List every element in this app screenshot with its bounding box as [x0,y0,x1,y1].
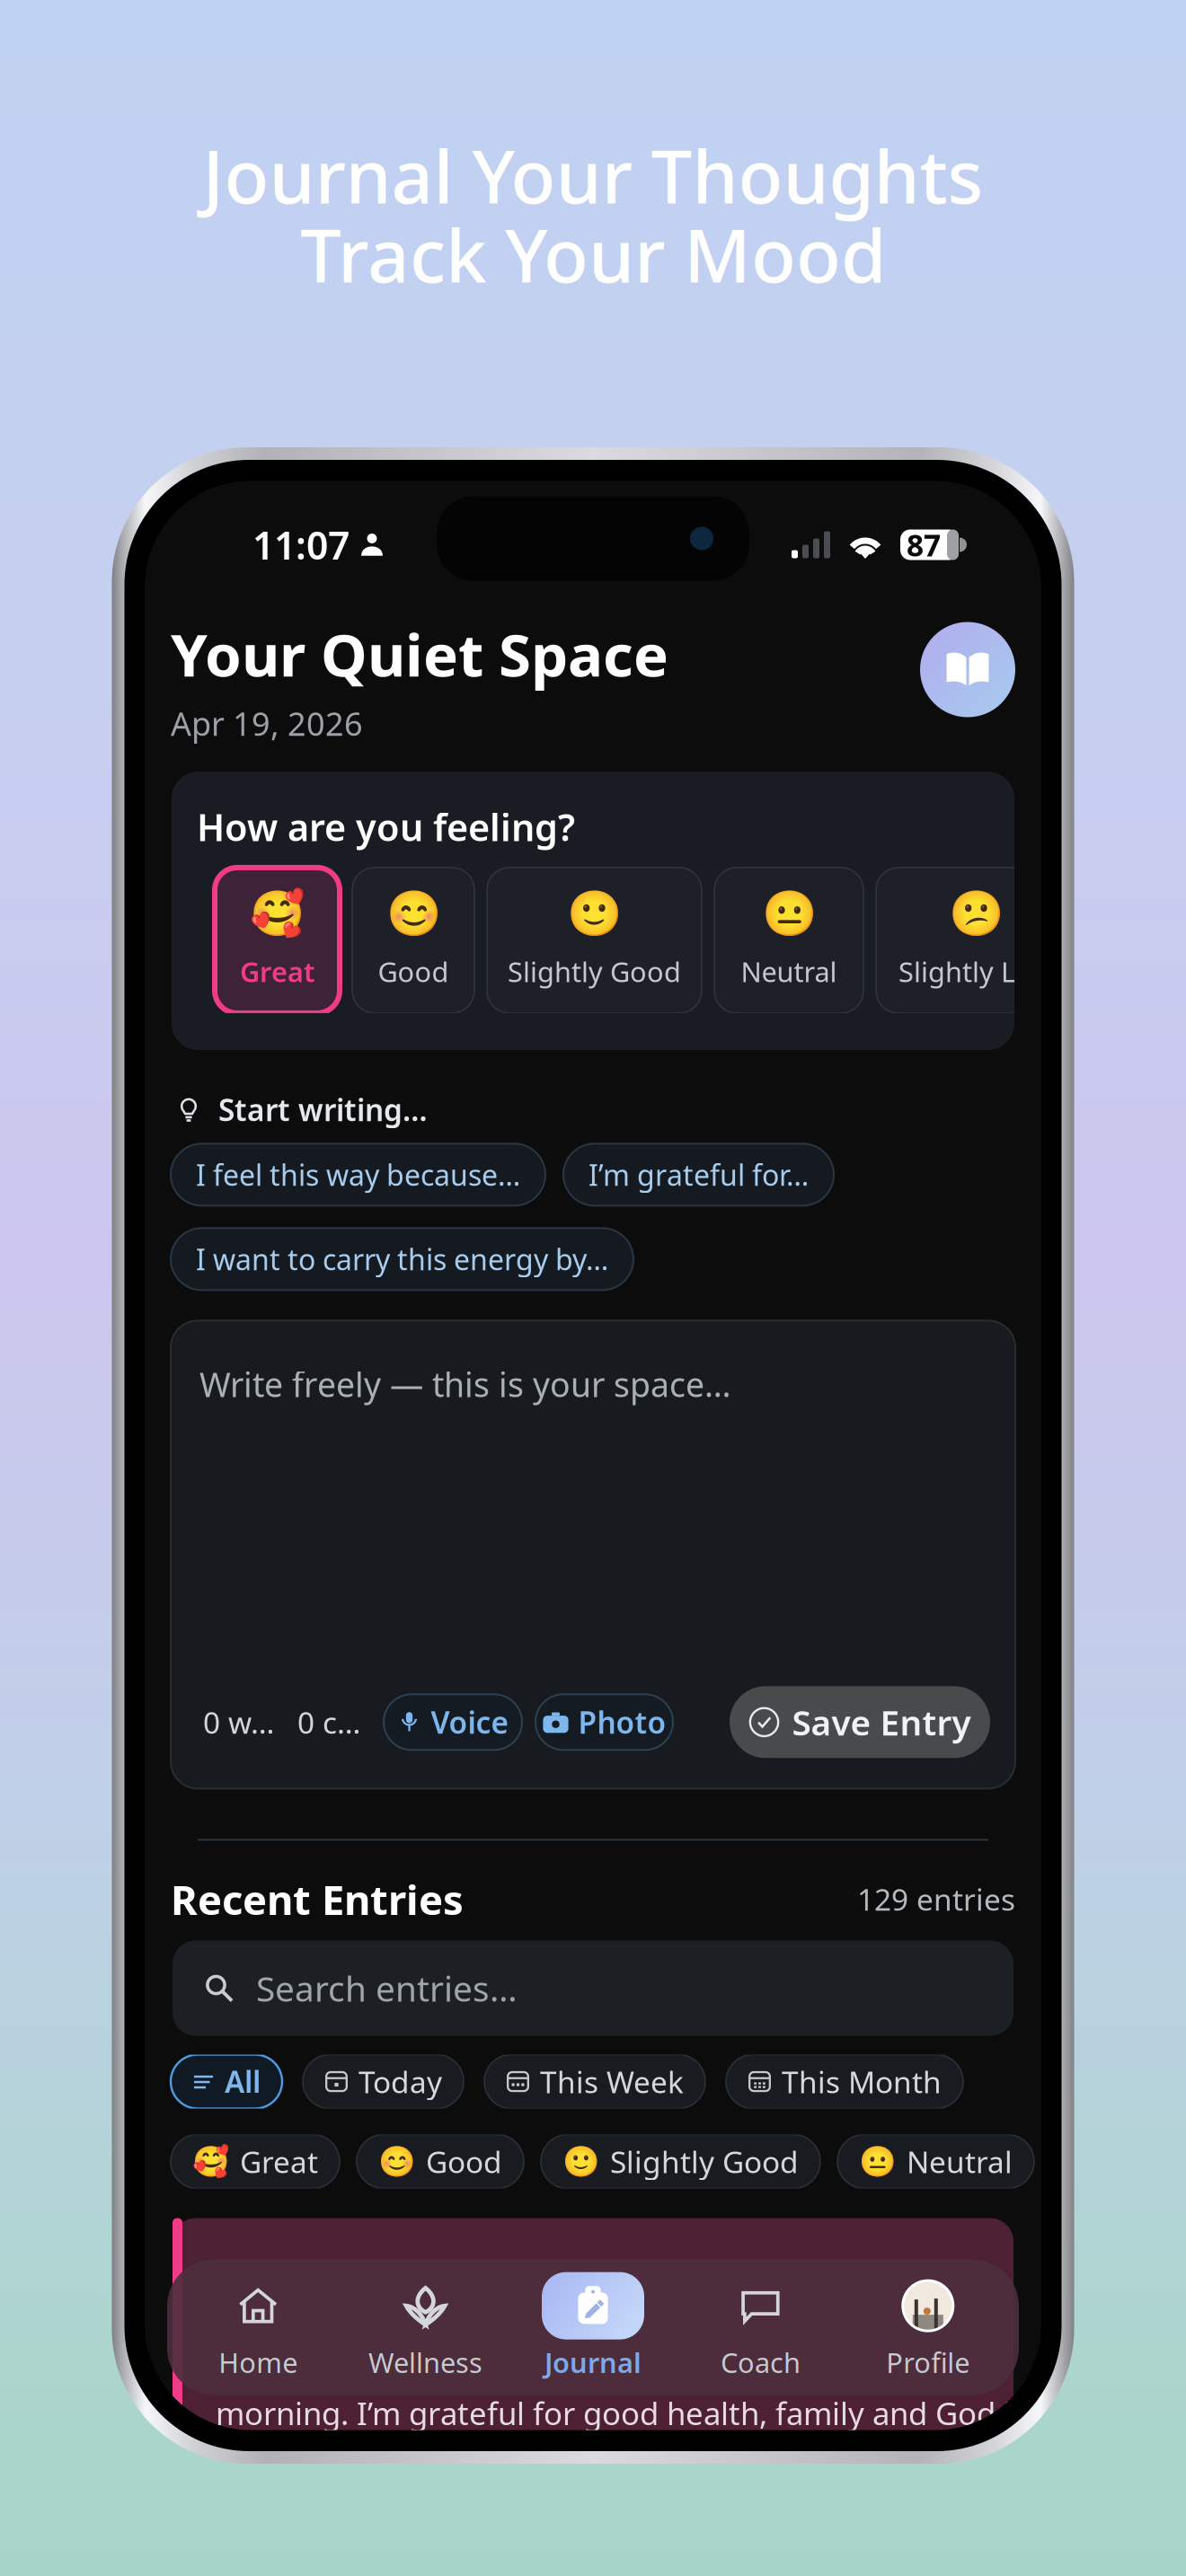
staticText: Neutral [741,953,837,990]
staticText: 😕 [1073,2144,1111,2179]
button[interactable]: I’m grateful for… [563,1144,834,1206]
staticText: Journal Your Thoughts [203,127,983,224]
button[interactable]: 🥰 [215,868,340,1013]
staticText: Write freely — this is your space… [199,1362,731,1406]
button[interactable]: Save Entry [730,1686,990,1758]
staticText: Neutral [907,2142,1013,2181]
button[interactable]: 🙂 [541,2135,820,2188]
staticText: 129 entries [857,1879,1015,1919]
button[interactable]: This Month [726,2055,963,2108]
staticText: 😊 [386,888,441,939]
staticText: Photo [578,1702,666,1742]
staticText: 87 [907,525,941,565]
button[interactable]: Journal library [920,622,1015,717]
staticText: 0 w… [203,1702,274,1742]
button[interactable]: Profile [844,2272,1012,2380]
staticText: 😊 [378,2144,416,2179]
button[interactable]: Journal [509,2272,677,2380]
staticText: 😕 [948,888,1003,939]
button[interactable]: Home [174,2272,342,2380]
staticText: 0 c… [297,1702,360,1742]
staticText: This Week [540,2062,684,2101]
staticText: Good [378,953,449,990]
staticText: Your Quiet Space [171,615,668,693]
button[interactable]: I want to carry this energy by… [171,1228,633,1290]
button[interactable]: Photo [535,1694,673,1750]
staticText: Slightly Good [508,953,681,990]
button[interactable]: 🙂 [487,868,702,1013]
staticText: I want to carry this energy by… [196,1240,608,1278]
staticText: 🙂 [567,888,622,939]
staticText: Today [358,2062,442,2101]
staticText: Slightly Low [898,953,1053,990]
button[interactable]: All [171,2055,282,2108]
staticText: Great [240,953,314,990]
button[interactable]: Coach [677,2272,844,2380]
staticText: I feel this way because… [196,1156,520,1194]
button[interactable]: 😕 [876,868,1075,1013]
button[interactable]: 😕 [1051,2135,1174,2188]
staticText: Apr 19, 2026 [171,702,363,745]
staticText: Home [219,2344,298,2380]
button[interactable]: 😐 [837,2135,1034,2188]
button[interactable]: 😊 [352,868,474,1013]
staticText: 🥰 [192,2144,230,2179]
staticText: How are you feeling? [197,802,575,851]
staticText: This Month [782,2062,942,2101]
staticText: Voice [431,1702,509,1742]
button[interactable]: I feel this way because… [171,1144,545,1206]
staticText: 😐 [761,888,816,939]
staticText: Great [240,2142,318,2181]
button[interactable]: 🥰 [171,2135,340,2188]
button[interactable]: Today [303,2055,464,2108]
staticText: Save Entry [792,1699,971,1745]
staticText: Track Your Mood [300,206,886,303]
button[interactable]: 😐 [714,868,863,1013]
button[interactable]: Voice [384,1694,522,1750]
staticText: Profile [886,2344,970,2380]
staticText: 🥰 [250,888,305,939]
staticText: Recent Entries [171,1872,464,1926]
staticText: All [225,2062,261,2101]
staticText: I’m grateful for… [589,1156,809,1194]
button[interactable]: 😊 [357,2135,524,2188]
button[interactable]: This Week [484,2055,705,2108]
staticText: 11:07 [252,519,350,570]
staticText: Start writing… [218,1090,428,1129]
button[interactable]: Wellness [342,2272,509,2380]
staticText: 🙂 [562,2144,600,2179]
staticText: Slightly Good [610,2142,799,2181]
staticText: Journal [544,2344,642,2380]
staticText: 😐 [859,2144,897,2179]
staticText: morning. I’m grateful for good health, f… [216,2392,1027,2434]
staticText: Wellness [368,2344,483,2380]
staticText: Search entries… [256,1965,518,2011]
staticText: Good [426,2142,502,2181]
staticText: Coach [720,2344,800,2380]
